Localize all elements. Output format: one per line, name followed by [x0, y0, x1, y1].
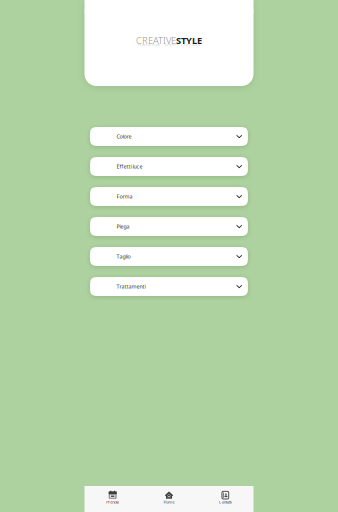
- staticText: Contatti: [219, 499, 232, 505]
- staticText: Effetti luce: [116, 163, 142, 170]
- button[interactable]: Forma: [90, 187, 248, 206]
- staticText: Trattamenti: [116, 283, 145, 290]
- staticText: CREATIVE: [136, 34, 176, 47]
- staticText: Home: [163, 499, 174, 505]
- button[interactable]: Prenota: [84, 486, 141, 512]
- staticText: Forma: [116, 193, 132, 200]
- staticText: Prenota: [106, 499, 119, 505]
- button[interactable]: Contatti: [197, 486, 253, 512]
- staticText: STYLE: [176, 34, 202, 47]
- staticText: Piega: [116, 223, 129, 230]
- button[interactable]: Home: [141, 486, 197, 512]
- staticText: Colore: [116, 133, 131, 140]
- button[interactable]: Trattamenti: [90, 277, 248, 296]
- button[interactable]: Colore: [90, 127, 248, 146]
- staticText: - PARRUCCHIERI - ESTETICA - SOLARIUM -: [135, 43, 203, 46]
- button[interactable]: Effetti luce: [90, 157, 248, 176]
- button[interactable]: Piega: [90, 217, 248, 236]
- button[interactable]: Taglio: [90, 247, 248, 266]
- staticText: Taglio: [116, 253, 130, 260]
